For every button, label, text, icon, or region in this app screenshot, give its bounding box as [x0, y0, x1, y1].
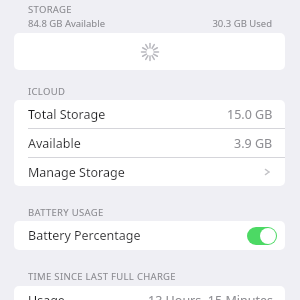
staticText: 84.8 GB Available — [28, 17, 105, 30]
staticText: 15.0 GB — [227, 106, 273, 123]
staticText: Battery Percentage — [28, 227, 141, 244]
staticText: Available — [28, 135, 81, 152]
button[interactable]: Usage — [14, 286, 285, 300]
button[interactable]: Battery Percentage — [14, 221, 285, 250]
button[interactable]: Manage Storage — [14, 158, 285, 186]
button[interactable]: Battery Percentage toggle — [247, 227, 277, 245]
staticText: Usage — [28, 292, 65, 300]
button[interactable]: Available — [14, 129, 285, 157]
staticText: STORAGE — [28, 3, 72, 16]
staticText: Manage Storage — [28, 164, 125, 181]
staticText: BATTERY USAGE — [28, 206, 104, 219]
staticText: 30.3 GB Used — [212, 17, 272, 30]
staticText: ICLOUD — [28, 85, 66, 98]
staticText: Total Storage — [28, 106, 106, 123]
staticText: 3.9 GB — [234, 135, 273, 152]
staticText: 13 Hours, 15 Minutes — [148, 292, 273, 300]
staticText: TIME SINCE LAST FULL CHARGE — [28, 270, 176, 283]
button[interactable]: Total Storage — [14, 100, 285, 128]
